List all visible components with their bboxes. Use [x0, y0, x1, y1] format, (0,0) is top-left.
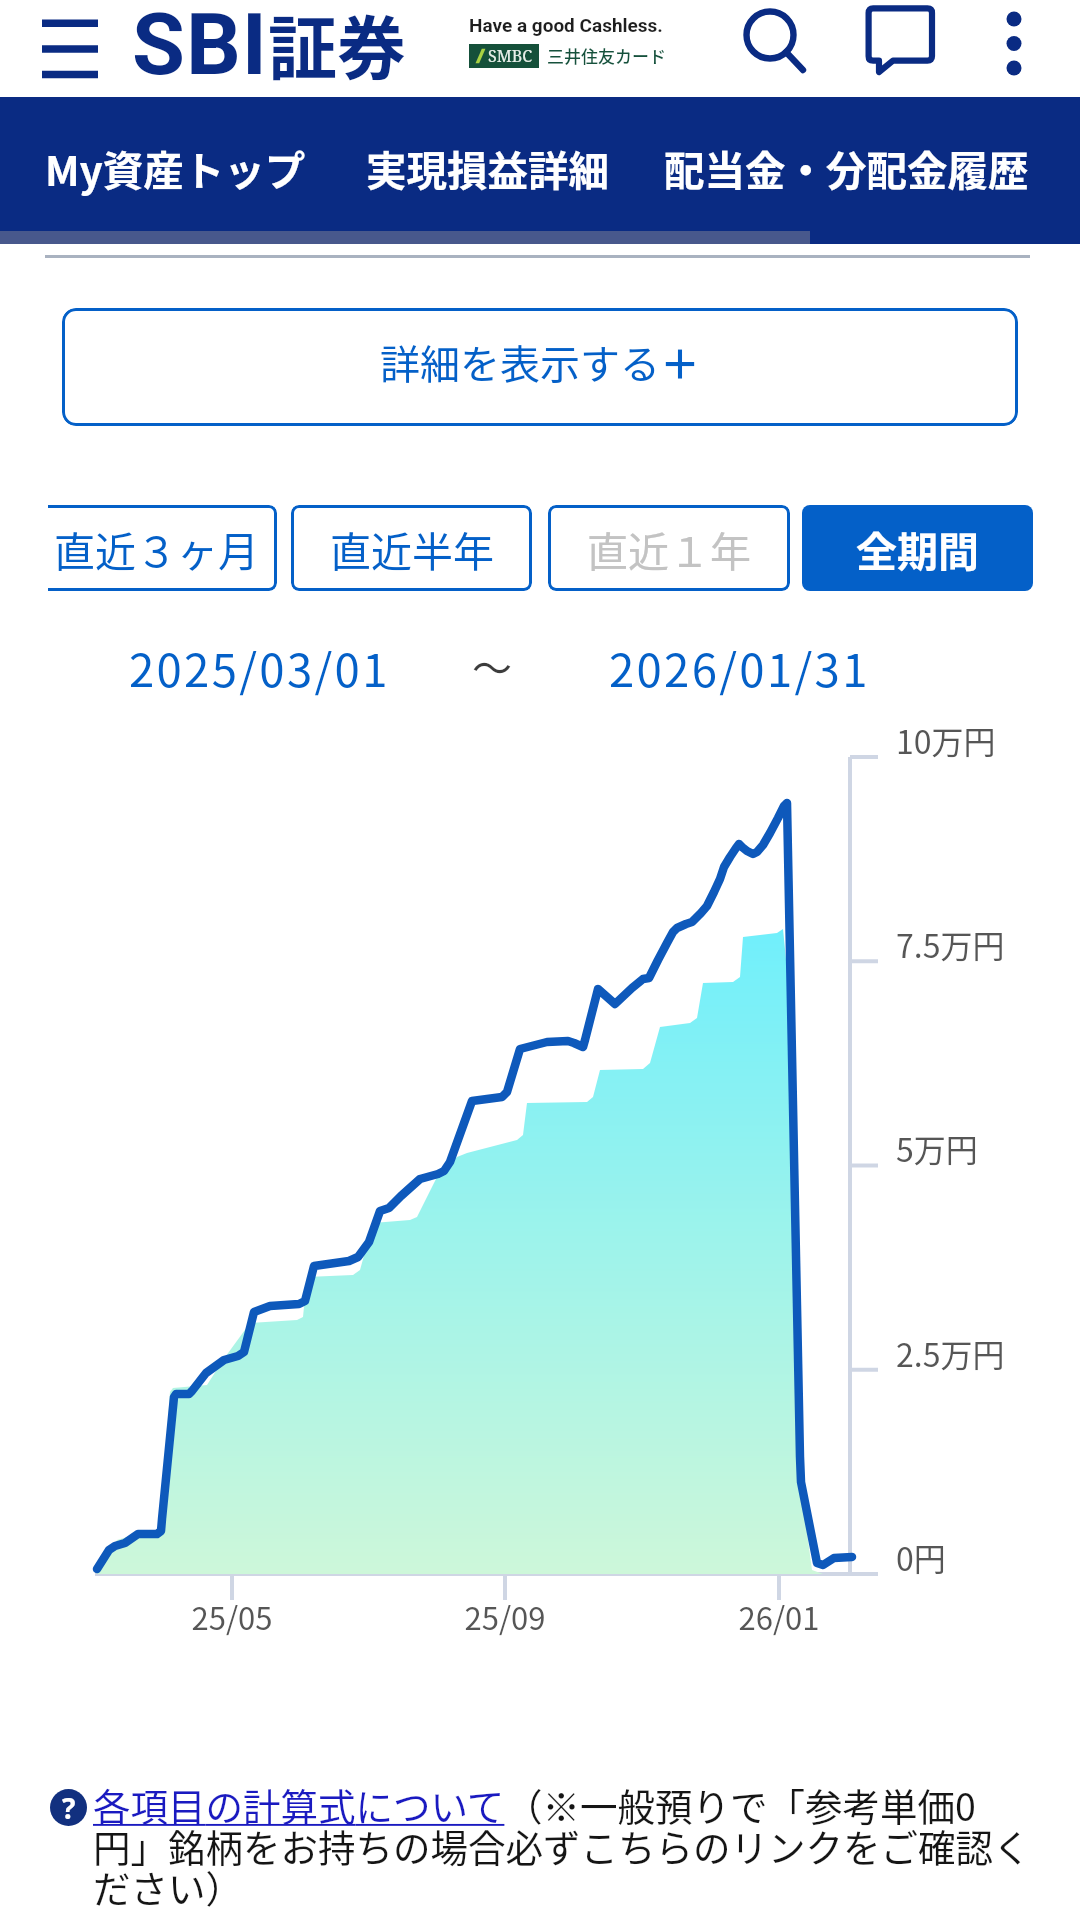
- staticText: 全期間: [856, 519, 979, 578]
- button[interactable]: 配当金・分配金履歴: [664, 139, 1029, 198]
- staticText: 0円: [896, 1534, 946, 1580]
- staticText: 証券: [268, 0, 406, 91]
- staticText: 7.5万円: [896, 921, 1005, 967]
- button[interactable]: Search: [722, 0, 818, 97]
- staticText: 25/05: [162, 1594, 302, 1639]
- button[interactable]: 実現損益詳細: [366, 139, 609, 198]
- staticText: Have a good Cashless.: [469, 14, 663, 36]
- staticText: 実現損益詳細: [366, 139, 609, 198]
- button[interactable]: 直近３ヶ月: [48, 505, 277, 591]
- staticText: 〜: [472, 637, 512, 695]
- button[interactable]: 直近１年: [548, 505, 790, 591]
- staticText: ＋: [660, 333, 700, 391]
- staticText: 5万円: [896, 1125, 978, 1171]
- staticText: （※一般預りで「参考単価0: [505, 1777, 976, 1831]
- staticText: 詳細を表示する: [380, 333, 660, 391]
- button[interactable]: 直近半年: [291, 505, 532, 591]
- button[interactable]: Menu: [22, 0, 117, 97]
- staticText: ?: [62, 1789, 76, 1826]
- staticText: 三井住友カード: [547, 43, 666, 68]
- staticText: 25/09: [435, 1594, 575, 1639]
- staticText: 26/01: [709, 1594, 849, 1639]
- staticText: 円」銘柄をお持ちの場合必ずこちらのリンクをご確認く ださい）: [93, 1818, 1031, 1914]
- staticText: 配当金・分配金履歴: [664, 139, 1029, 198]
- staticText: 直近３ヶ月: [54, 519, 259, 578]
- staticText: 直近半年: [330, 519, 494, 578]
- staticText: 2.5万円: [896, 1330, 1005, 1376]
- button[interactable]: More options: [974, 0, 1054, 97]
- staticText: 直近１年: [587, 519, 751, 578]
- button[interactable]: 全期間: [802, 505, 1033, 591]
- button[interactable]: 詳細を表示する: [62, 308, 1018, 426]
- staticText: 2025/03/01: [129, 634, 390, 698]
- button[interactable]: My資産トップ: [45, 139, 306, 198]
- staticText: My資産トップ: [45, 139, 306, 198]
- staticText: 10万円: [896, 717, 996, 763]
- button[interactable]: 各項目の計算式について: [93, 1777, 505, 1831]
- button[interactable]: Messages: [852, 0, 948, 97]
- staticText: 2026/01/31: [609, 634, 870, 698]
- staticText: SBI: [132, 0, 268, 91]
- staticText: SMBC: [488, 45, 533, 67]
